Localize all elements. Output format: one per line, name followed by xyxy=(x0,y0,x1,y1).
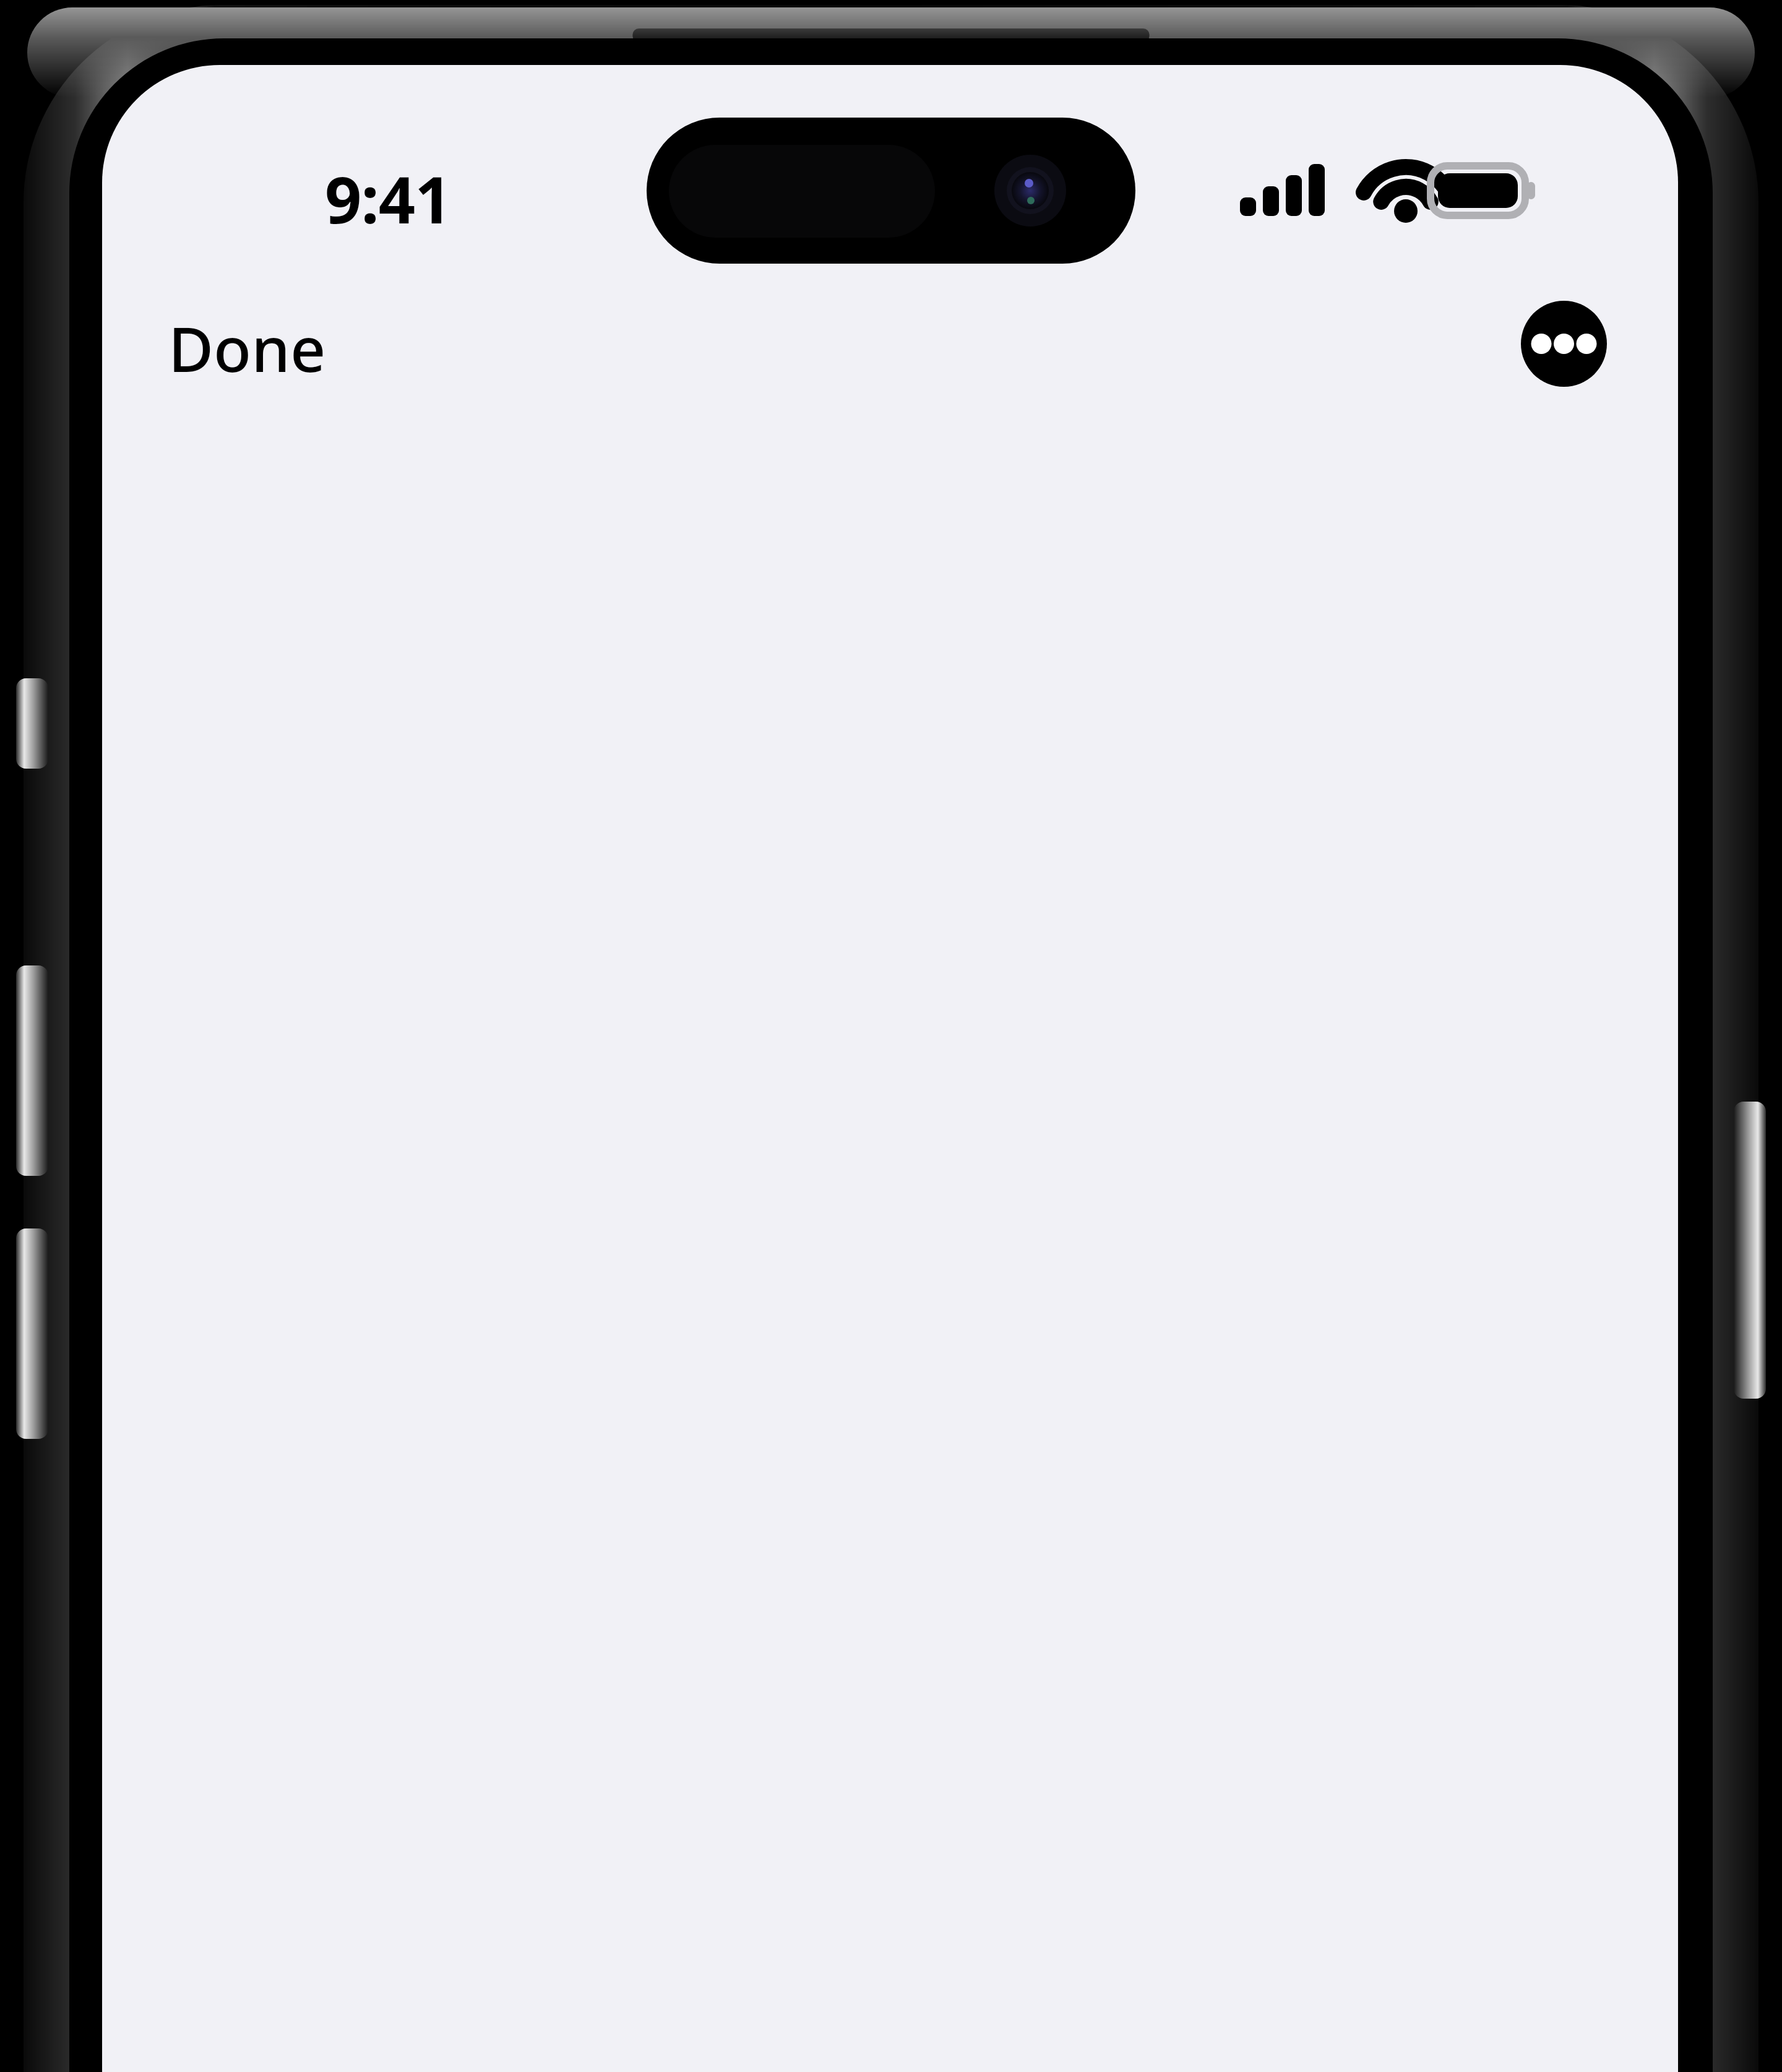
staticText: 9:41 xyxy=(325,155,451,243)
staticText: Done xyxy=(168,306,326,390)
button[interactable]: Done xyxy=(156,297,338,399)
button[interactable]: More options xyxy=(1521,301,1607,387)
